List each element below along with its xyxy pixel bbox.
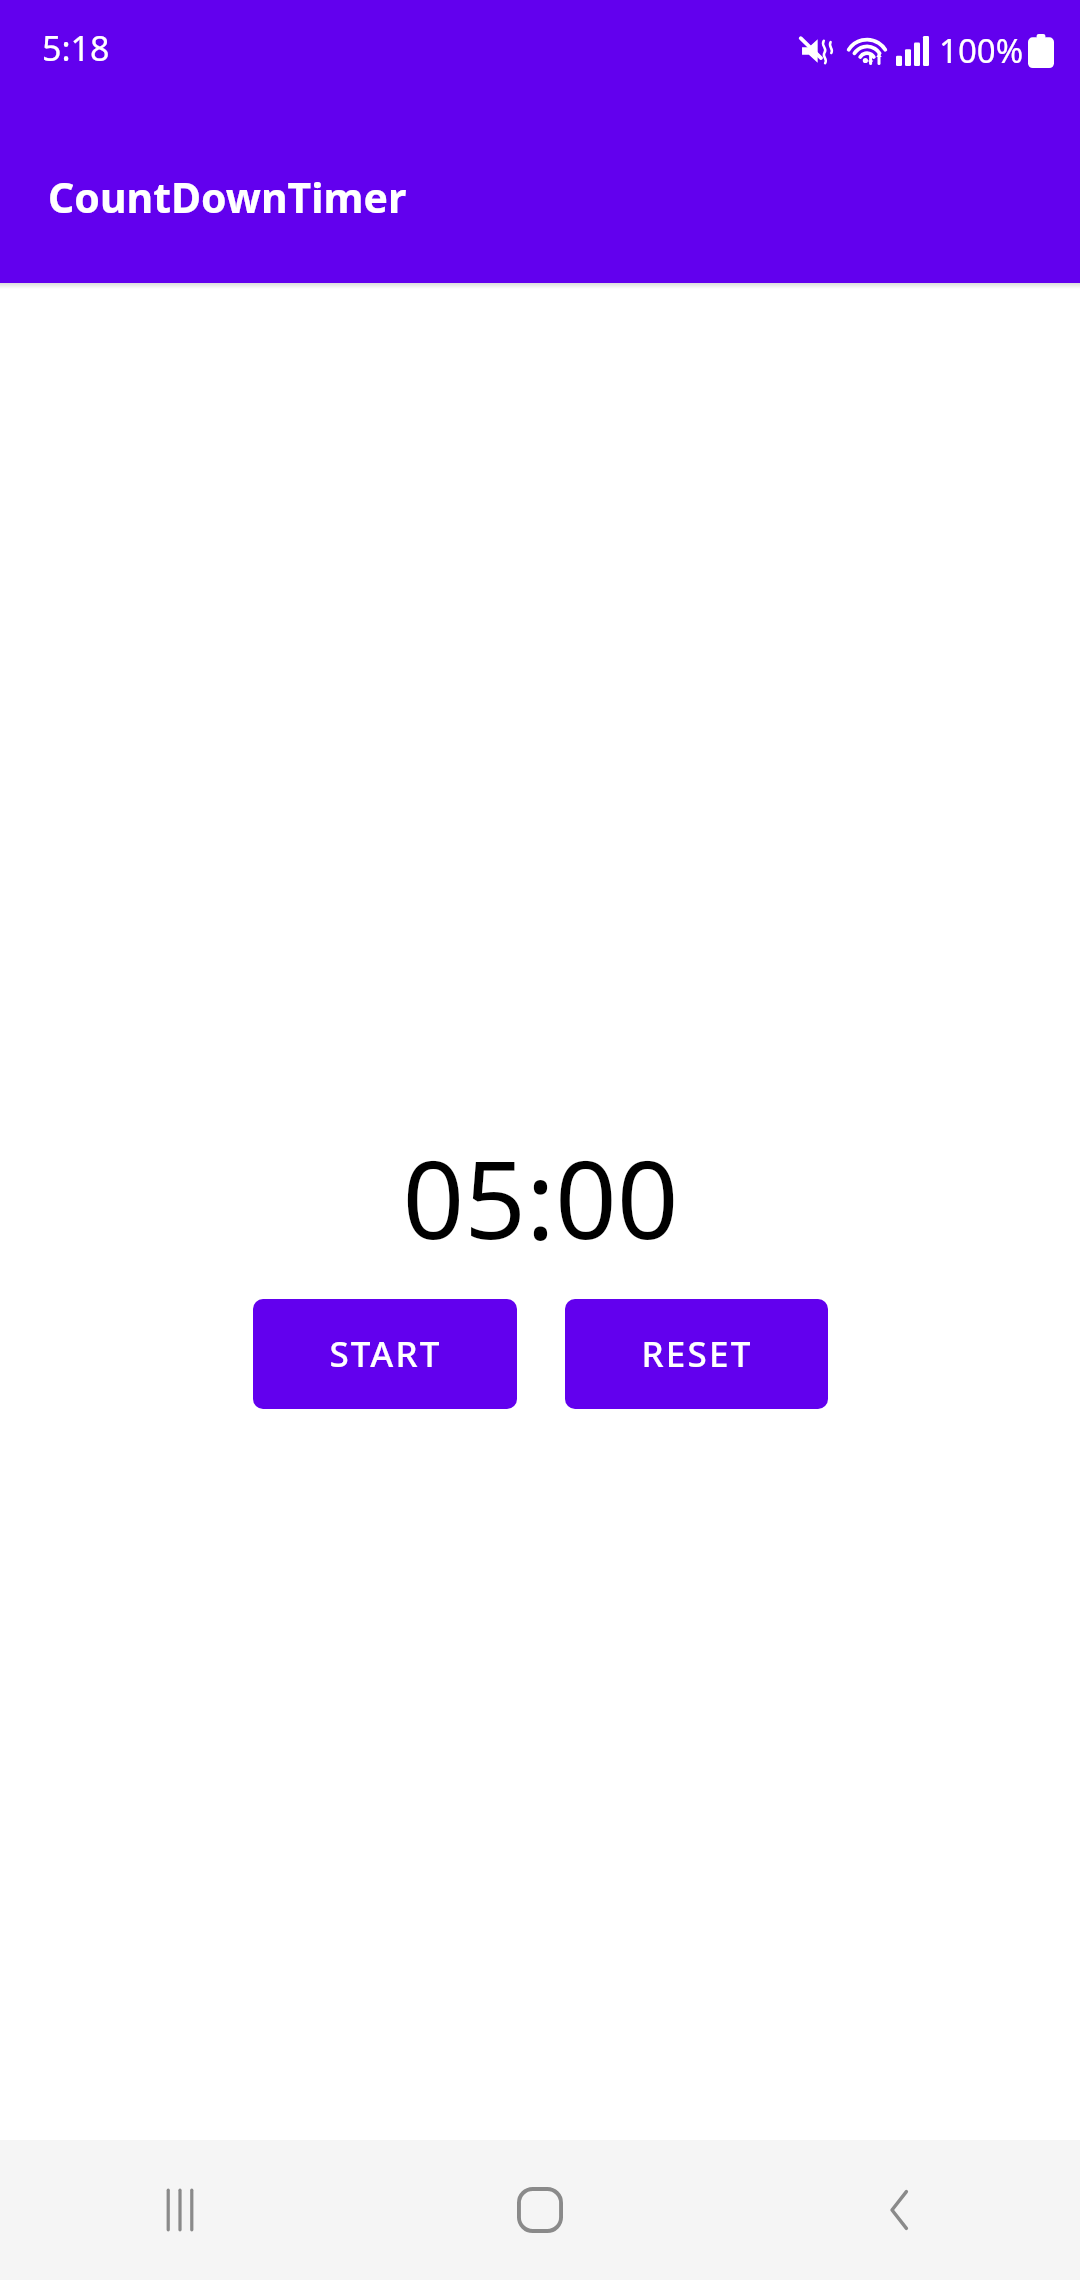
staticText: RESET [641, 1330, 753, 1378]
staticText: 100% [939, 28, 1024, 73]
button[interactable]: Back [720, 2140, 1080, 2280]
staticText: 5:18 [42, 25, 110, 71]
button[interactable]: RESET [565, 1299, 828, 1409]
staticText: CountDownTimer [48, 169, 407, 225]
button[interactable]: Recent apps [0, 2140, 360, 2280]
button[interactable]: Home [360, 2140, 720, 2280]
staticText: START [329, 1330, 442, 1378]
button[interactable]: START [253, 1299, 517, 1409]
staticText: 05:00 [402, 1124, 679, 1271]
